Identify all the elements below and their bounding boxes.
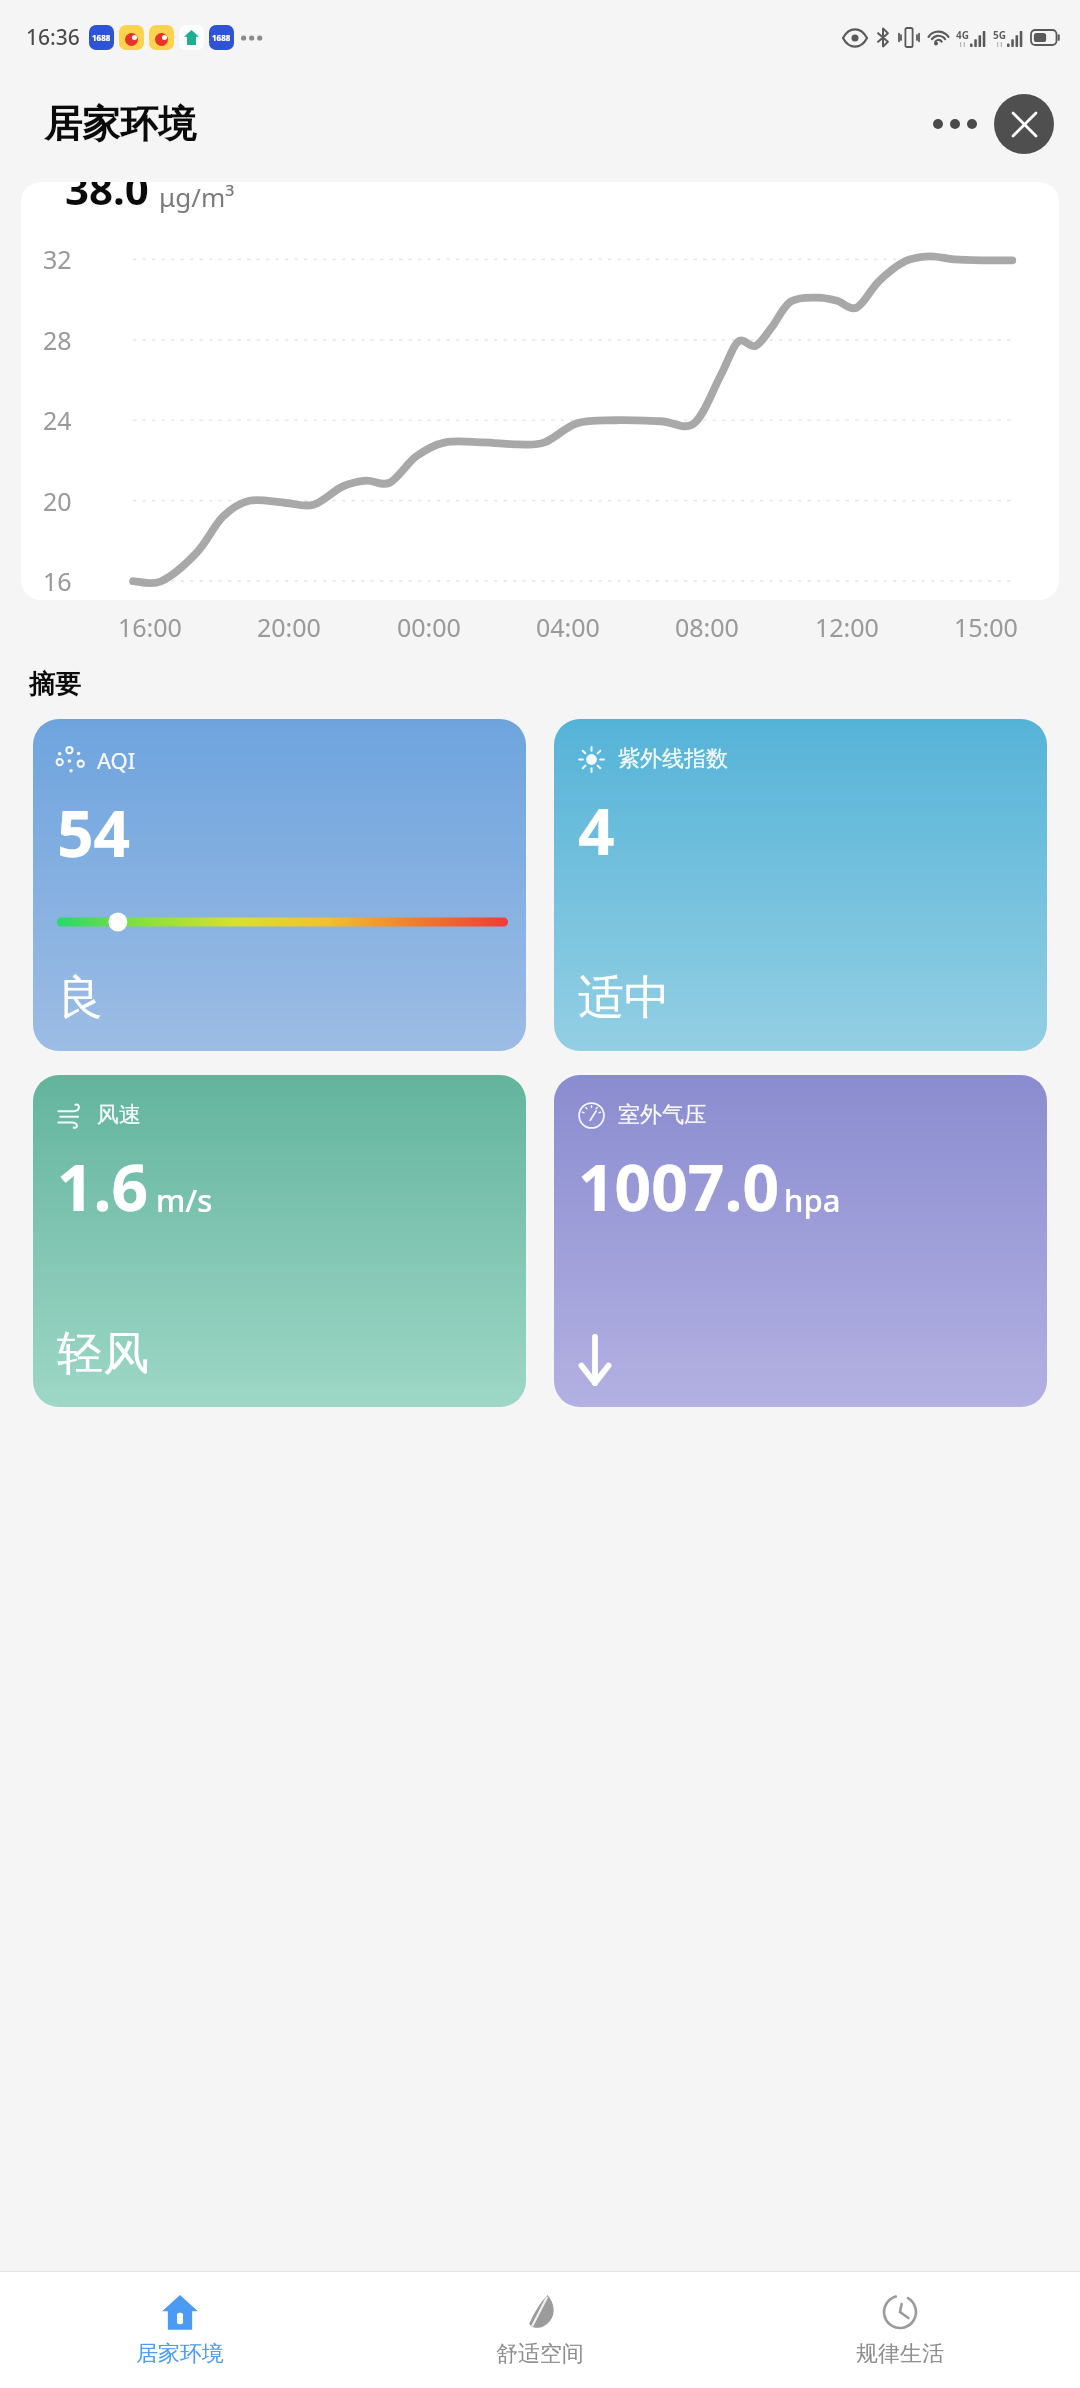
staticText: 室外气压 (618, 1101, 706, 1129)
staticText: 1688 (212, 32, 231, 43)
button[interactable]: 32 (21, 182, 1059, 600)
staticText: 4G (956, 28, 969, 42)
staticText: 1007.0 (578, 1143, 780, 1230)
staticText: 12:00 (815, 610, 879, 644)
staticText: 15:00 (954, 610, 1018, 644)
staticText: 16 (43, 564, 72, 598)
staticText: 良 (57, 969, 103, 1027)
button[interactable]: 风速 (33, 1075, 526, 1407)
staticText: 居家环境 (136, 2340, 224, 2368)
staticText: 居家环境 (44, 100, 196, 148)
staticText: 20:00 (257, 610, 321, 644)
staticText: 紫外线指数 (618, 745, 728, 773)
button[interactable]: Close (994, 94, 1054, 154)
staticText: AQI (97, 745, 136, 775)
staticText: 00:00 (397, 610, 461, 644)
staticText: 04:00 (536, 610, 600, 644)
staticText: 5G (993, 28, 1006, 42)
button[interactable]: 室外气压 (554, 1075, 1047, 1407)
staticText: 舒适空间 (496, 2340, 584, 2368)
button[interactable]: 居家环境 (0, 2272, 360, 2388)
button[interactable]: More options (926, 100, 974, 148)
staticText: 1.6 (57, 1143, 149, 1230)
staticText: 28 (43, 323, 72, 357)
staticText: hpa (784, 1179, 841, 1221)
staticText: m/s (156, 1179, 213, 1221)
button[interactable]: 规律生活 (720, 2272, 1080, 2388)
staticText: 摘要 (29, 668, 81, 701)
staticText: 规律生活 (856, 2340, 944, 2368)
button[interactable]: 舒适空间 (360, 2272, 720, 2388)
staticText: 1688 (92, 32, 111, 43)
staticText: 轻风 (57, 1325, 149, 1383)
staticText: 16:36 (26, 23, 80, 52)
staticText: μg/m³ (159, 182, 235, 214)
staticText: 适中 (578, 969, 670, 1027)
staticText: 38.0 (65, 182, 149, 217)
staticText: 风速 (97, 1101, 141, 1129)
staticText: 20 (43, 484, 72, 518)
button[interactable]: 紫外线指数 (554, 719, 1047, 1051)
button[interactable]: AQI (33, 719, 526, 1051)
staticText: 08:00 (675, 610, 739, 644)
staticText: 16:00 (118, 610, 182, 644)
staticText: 4 (578, 787, 615, 874)
staticText: 32 (43, 242, 72, 276)
staticText: 24 (43, 403, 72, 437)
staticText: 54 (57, 789, 131, 876)
